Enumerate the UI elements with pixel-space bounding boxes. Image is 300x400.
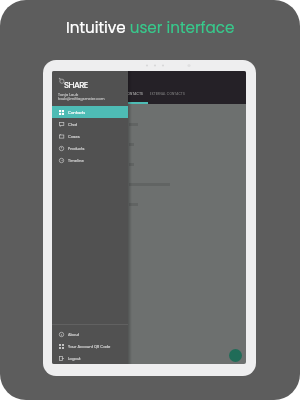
staticText: taub@mittagsmeier.com [58,96,105,101]
button[interactable]: Cases [52,130,128,142]
button[interactable]: EXTERNAL CONTACTS [150,92,185,96]
staticText: Tanja Laub [58,92,79,97]
staticText: Products [68,146,85,151]
button[interactable]: Chat [52,118,128,130]
staticText: Contacts [68,110,86,115]
staticText: SHARE [64,79,88,91]
staticText: Intuitive user interface [66,17,235,38]
staticText: Your Account QR Code [68,344,111,349]
staticText: Cases [68,134,80,139]
button[interactable]: Timeline [52,154,128,166]
staticText: About [68,332,80,337]
staticText: Logout [68,356,81,361]
button[interactable]: Your Account QR Code [52,340,128,352]
staticText: Timeline [68,158,84,163]
button[interactable]: About [52,328,128,340]
button[interactable]: MY CONTACTS [119,92,144,96]
button[interactable]: Products [52,142,128,154]
button[interactable]: Contacts [52,106,128,118]
staticText: Chat [68,122,78,127]
button[interactable]: Logout [52,352,128,364]
button[interactable]: Add contact [229,349,242,362]
